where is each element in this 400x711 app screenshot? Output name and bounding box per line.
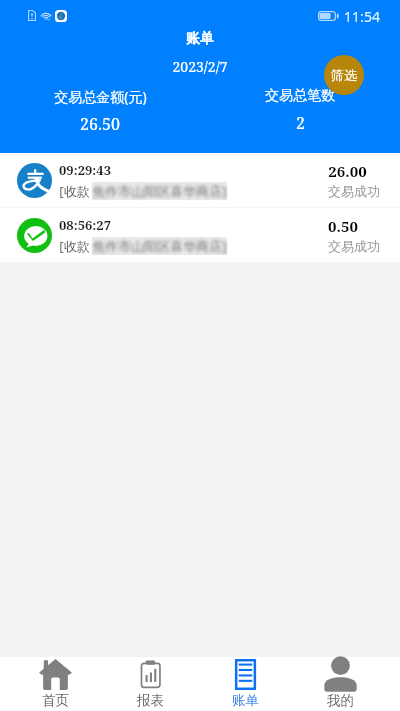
staticText: 账单 bbox=[232, 692, 259, 709]
staticText: 2 bbox=[296, 112, 305, 134]
staticText: 焦作市山阳区喜华商店] bbox=[92, 182, 227, 200]
button[interactable]: Reports bbox=[103, 657, 198, 711]
staticText: 08:56:27 bbox=[59, 216, 111, 234]
staticText: 交易总金额(元) bbox=[54, 87, 147, 106]
staticText: 焦作市山阳区喜华商店] bbox=[92, 237, 227, 255]
button[interactable]: Home bbox=[8, 657, 103, 711]
staticText: [收款 bbox=[59, 182, 90, 200]
button[interactable]: Profile bbox=[293, 657, 388, 711]
staticText: 账单 bbox=[186, 30, 214, 48]
staticText: 09:29:43 bbox=[59, 161, 111, 179]
staticText: 2023/2/7 bbox=[172, 57, 228, 76]
button[interactable]: 09:29:43 bbox=[0, 153, 400, 207]
staticText: 交易总笔数 bbox=[265, 87, 335, 105]
staticText: 我的 bbox=[327, 692, 354, 709]
staticText: 交易成功 bbox=[328, 183, 380, 199]
staticText: 报表 bbox=[137, 692, 164, 709]
button[interactable]: Bills bbox=[198, 657, 293, 711]
staticText: 26.50 bbox=[80, 113, 120, 135]
staticText: [收款 bbox=[59, 237, 90, 255]
staticText: 0.50 bbox=[328, 216, 358, 236]
staticText: 交易成功 bbox=[328, 238, 380, 254]
button[interactable]: 筛选 bbox=[324, 55, 364, 95]
staticText: 首页 bbox=[42, 692, 69, 709]
staticText: 26.00 bbox=[328, 161, 367, 181]
button[interactable]: 08:56:27 bbox=[0, 208, 400, 262]
staticText: 筛选 bbox=[331, 67, 357, 83]
staticText: 11:54 bbox=[344, 7, 380, 26]
